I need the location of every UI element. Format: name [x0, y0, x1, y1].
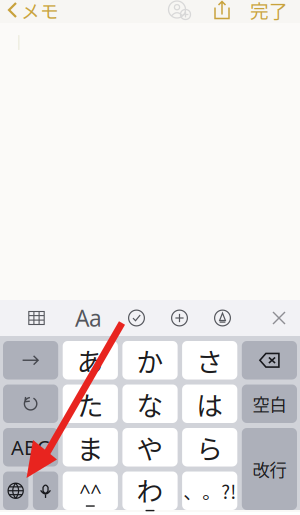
button[interactable]: ^^	[63, 471, 118, 510]
button[interactable]: Aa	[75, 303, 102, 333]
button[interactable]: わ	[122, 471, 178, 510]
button[interactable]: ら	[182, 428, 237, 466]
staticText: は	[196, 384, 223, 423]
staticText: ABC	[11, 434, 50, 461]
button[interactable]: Markup	[214, 309, 231, 326]
button[interactable]: 、。?!	[182, 471, 237, 510]
staticText: 空白	[252, 391, 286, 416]
button[interactable]: 空白	[242, 384, 297, 423]
button[interactable]: 完了	[250, 0, 300, 23]
button[interactable]: ま	[63, 428, 118, 466]
button[interactable]: や	[122, 428, 178, 466]
button[interactable]: あ	[63, 341, 118, 379]
button[interactable]: メモ	[0, 0, 65, 23]
staticText: や	[136, 428, 163, 466]
button[interactable]: た	[63, 384, 118, 423]
button[interactable]: は	[182, 384, 237, 423]
button[interactable]: Share	[214, 0, 230, 23]
button[interactable]: Next candidate	[3, 341, 58, 379]
staticText: 、。?!	[183, 477, 236, 504]
staticText: 完了	[250, 0, 288, 23]
staticText: 改行	[252, 456, 286, 482]
button[interactable]: な	[122, 384, 178, 423]
staticText: さ	[196, 341, 223, 379]
button[interactable]: さ	[182, 341, 237, 379]
button[interactable]: Checklist	[128, 309, 145, 326]
staticText: わ	[136, 470, 163, 509]
button[interactable]: Delete	[242, 341, 297, 379]
button[interactable]: Add People	[168, 0, 192, 23]
staticText: メモ	[21, 0, 59, 23]
staticText: ま	[77, 428, 104, 466]
staticText: あ	[77, 341, 104, 379]
staticText: か	[136, 341, 163, 379]
button[interactable]: ABC	[3, 428, 58, 466]
button[interactable]: Table	[28, 310, 45, 326]
staticText: Aa	[75, 303, 102, 333]
button[interactable]: Dictation	[33, 471, 58, 510]
staticText: た	[77, 384, 104, 423]
button[interactable]: 改行	[242, 428, 297, 510]
staticText: な	[136, 384, 163, 423]
button[interactable]: Undo	[3, 384, 58, 423]
staticText: ^^	[79, 478, 101, 504]
staticText: ら	[196, 428, 223, 466]
button[interactable]: Next keyboard	[3, 471, 28, 510]
button[interactable]: Add attachment	[171, 309, 188, 326]
button[interactable]: か	[122, 341, 178, 379]
button[interactable]: Hide keyboard	[272, 311, 286, 325]
